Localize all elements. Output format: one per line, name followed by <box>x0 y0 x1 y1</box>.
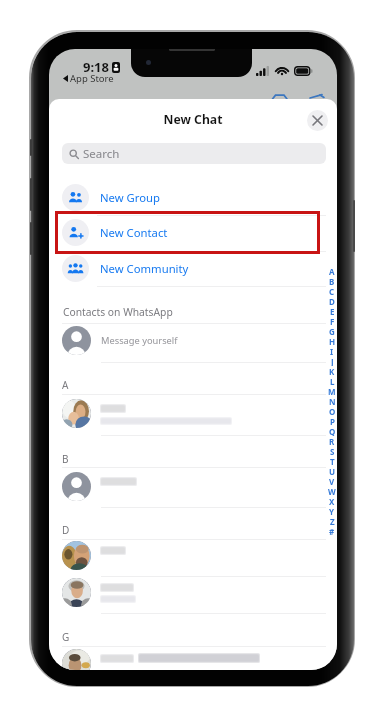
staticText: A <box>62 378 69 392</box>
staticText: C <box>329 286 335 296</box>
staticText: S <box>330 446 335 456</box>
staticText: O <box>329 406 336 416</box>
button[interactable] <box>62 649 91 670</box>
button[interactable]: New Community <box>49 250 337 286</box>
staticText: E <box>330 306 335 316</box>
staticText: L <box>330 376 335 386</box>
staticText: W <box>328 486 336 496</box>
staticText: P <box>330 416 335 426</box>
staticText: F <box>330 316 335 326</box>
staticText: New Chat <box>49 111 337 128</box>
staticText: J <box>331 356 334 366</box>
staticText: New Group <box>100 190 160 205</box>
staticText: I <box>330 346 334 356</box>
staticText: # <box>329 526 335 536</box>
button[interactable]: Close <box>307 110 328 131</box>
staticText: H <box>329 336 336 346</box>
staticText: Contacts on WhatsApp <box>63 305 173 319</box>
staticText: T <box>330 456 335 466</box>
staticText: Y <box>329 506 335 516</box>
staticText: New Contact <box>100 225 168 240</box>
staticText: V <box>329 476 335 486</box>
button[interactable]: Search <box>62 143 326 164</box>
staticText: G <box>62 630 70 644</box>
staticText: R <box>329 436 335 446</box>
staticText: U <box>329 466 336 476</box>
staticText: Search <box>83 146 120 162</box>
staticText: K <box>329 366 335 376</box>
staticText: A <box>329 266 335 276</box>
staticText: Message yourself <box>101 334 178 347</box>
staticText: N <box>329 396 336 406</box>
staticText: M <box>328 386 336 396</box>
button[interactable] <box>62 541 91 570</box>
button[interactable] <box>62 326 91 355</box>
staticText: D <box>329 296 335 306</box>
staticText: B <box>62 452 69 466</box>
button[interactable] <box>62 472 91 501</box>
button[interactable] <box>62 399 91 428</box>
button[interactable]: New Contact <box>49 214 337 250</box>
staticText: Z <box>330 516 335 526</box>
staticText: X <box>329 496 335 506</box>
button[interactable]: New Group <box>49 179 337 215</box>
staticText: G <box>329 326 335 336</box>
staticText: Q <box>329 426 336 436</box>
staticText: App Store <box>70 72 114 85</box>
staticText: 9:18 <box>83 58 109 76</box>
staticText: B <box>329 276 335 286</box>
staticText: New Community <box>100 261 189 276</box>
staticText: D <box>62 523 70 537</box>
button[interactable] <box>62 578 91 607</box>
